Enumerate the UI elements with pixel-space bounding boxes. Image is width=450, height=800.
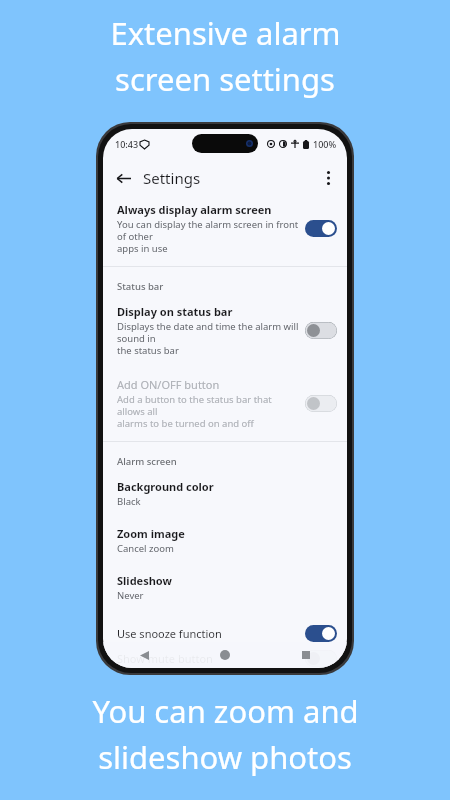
staticText: Cancel zoom [117,542,174,555]
staticText: Status bar [117,280,164,293]
button[interactable]: Home [214,644,236,666]
staticText: 100% [313,138,337,150]
button[interactable]: Toggle off [305,395,337,412]
staticText: Displays the date and time the alarm wil… [117,320,299,357]
button[interactable]: Slideshow [103,568,347,607]
button[interactable]: Back [109,164,137,192]
button[interactable]: Toggle off [305,322,337,339]
button[interactable]: Display on status bar [103,299,347,362]
staticText: Display on status bar [117,304,233,319]
staticText: Always display alarm screen [117,202,272,217]
button[interactable]: Toggle on [305,220,337,237]
button[interactable]: Back [133,644,155,666]
button[interactable]: Toggle on [305,625,337,642]
staticText: Zoom image [117,526,185,541]
button[interactable]: Toggle off [305,650,337,667]
staticText: 10:43 [115,138,139,150]
staticText: screen settings [115,58,335,100]
staticText: Add a button to the status bar that allo… [117,393,299,430]
button[interactable]: Always display alarm screen [103,197,347,260]
button[interactable]: Add ON/OFF button [103,372,347,435]
staticText: Black [117,495,141,508]
button[interactable]: Recent apps [295,644,317,666]
button[interactable]: Background color [103,474,347,513]
staticText: You can display the alarm screen in fron… [117,218,299,255]
staticText: Slideshow [117,573,172,588]
staticText: Add ON/OFF button [117,377,220,392]
staticText: Use snooze function [117,626,305,641]
staticText: Background color [117,479,214,494]
staticText: Settings [143,168,201,188]
staticText: Never [117,589,144,602]
button[interactable]: Use snooze function [103,617,347,649]
staticText: You can zoom and [92,690,359,732]
staticText: Show mute button [117,651,305,666]
staticText: slideshow photos [98,736,352,778]
button[interactable]: Show mute button [103,649,347,668]
staticText: Alarm screen [117,455,177,468]
button[interactable]: Zoom image [103,521,347,560]
button[interactable]: More options [314,164,342,192]
staticText: Extensive alarm [110,12,341,54]
